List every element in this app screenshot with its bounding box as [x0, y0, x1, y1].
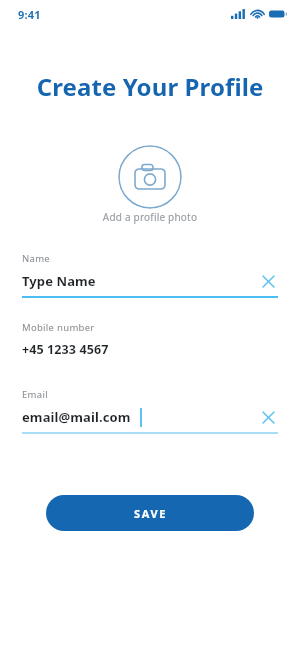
staticText: Type Name — [22, 272, 258, 290]
staticText: Create Your Profile — [0, 70, 300, 103]
staticText: SAVE — [134, 506, 167, 521]
staticText: 9:41 — [18, 7, 41, 22]
button[interactable]: SAVE — [46, 495, 254, 531]
staticText: Email — [22, 388, 48, 401]
button[interactable]: Type Name — [22, 271, 278, 291]
staticText: Mobile number — [22, 321, 95, 334]
button[interactable]: Clear — [258, 407, 278, 427]
button[interactable]: Add a profile photo — [118, 145, 182, 209]
staticText: Name — [22, 252, 50, 265]
staticText: email@mail.com — [22, 408, 131, 426]
button[interactable]: +45 1233 4567 — [22, 341, 278, 358]
staticText: Add a profile photo — [0, 210, 300, 224]
staticText: +45 1233 4567 — [22, 341, 109, 358]
button[interactable]: Clear — [258, 271, 278, 291]
button[interactable]: email@mail.com — [22, 407, 278, 427]
